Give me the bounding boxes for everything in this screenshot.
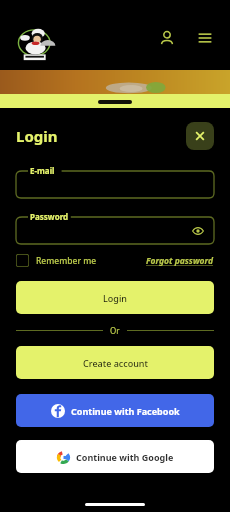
staticText: Password: [30, 211, 69, 222]
staticText: Or: [110, 325, 120, 336]
button[interactable]: Show password: [190, 223, 206, 239]
button[interactable]: Continue with Facebook: [16, 394, 214, 427]
staticText: Login: [103, 292, 127, 304]
button[interactable]: Password: [16, 211, 214, 244]
staticText: Remember me: [36, 255, 97, 267]
button[interactable]: Menu: [190, 23, 220, 53]
button[interactable]: Forgot password: [146, 255, 214, 267]
button[interactable]: Account: [152, 23, 182, 53]
button[interactable]: E-mail: [16, 165, 214, 198]
button[interactable]: Remember me: [16, 254, 97, 267]
staticText: Create account: [83, 357, 148, 369]
staticText: E-mail: [30, 165, 55, 176]
staticText: Continue with Facebook: [71, 405, 180, 417]
staticText: Forgot password: [146, 255, 214, 267]
button[interactable]: Login: [16, 281, 214, 314]
button[interactable]: Close: [186, 122, 214, 150]
staticText: Login: [16, 126, 58, 146]
button[interactable]: Continue with Google: [16, 440, 214, 473]
button[interactable]: Create account: [16, 346, 214, 379]
staticText: Continue with Google: [76, 451, 174, 463]
button[interactable]: [14, 27, 58, 63]
